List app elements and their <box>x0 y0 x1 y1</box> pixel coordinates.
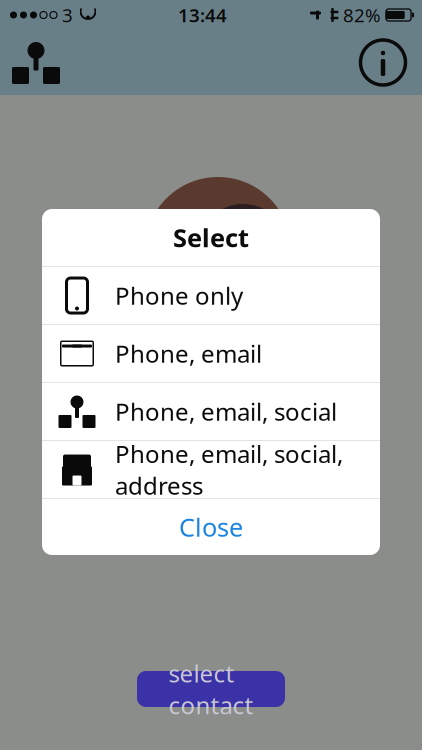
staticText: select contact <box>168 657 253 721</box>
button[interactable]: Phone only <box>42 267 380 324</box>
button[interactable]: Info <box>352 32 414 92</box>
button[interactable]: Close <box>42 499 380 555</box>
button[interactable]: Share <box>8 32 64 92</box>
staticText: Select <box>173 221 249 254</box>
button[interactable]: Phone, email <box>42 325 380 382</box>
staticText: 82% <box>343 3 381 27</box>
button[interactable]: Phone, email, social, address <box>42 441 380 498</box>
staticText: Phone only <box>115 280 243 311</box>
staticText: 3 <box>62 3 73 27</box>
staticText: Phone, email <box>115 338 262 369</box>
button[interactable]: Phone, email, social <box>42 383 380 440</box>
button[interactable]: select contact <box>137 671 285 707</box>
staticText: Phone, email, social <box>115 396 337 427</box>
staticText: 13:44 <box>178 3 227 27</box>
staticText: Close <box>179 510 243 544</box>
staticText: Phone, email, social, address <box>115 438 343 501</box>
